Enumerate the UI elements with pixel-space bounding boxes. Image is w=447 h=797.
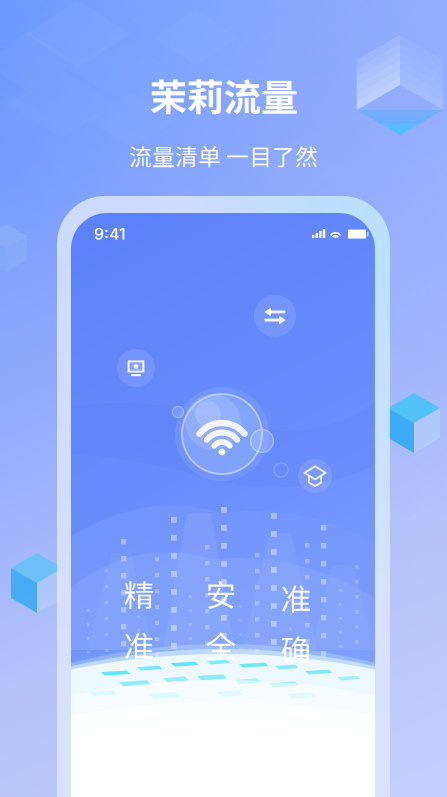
staticText: 全 — [205, 622, 236, 667]
staticText: 茉莉流量 — [149, 68, 297, 122]
staticText: 准 — [123, 622, 154, 667]
staticText: 9:41 — [94, 224, 126, 244]
staticText: 确 — [280, 626, 311, 671]
staticText: 安 — [205, 571, 236, 615]
staticText: 流量清单 一目了然 — [129, 139, 318, 172]
staticText: 精 — [123, 571, 154, 615]
staticText: 准 — [280, 575, 311, 619]
